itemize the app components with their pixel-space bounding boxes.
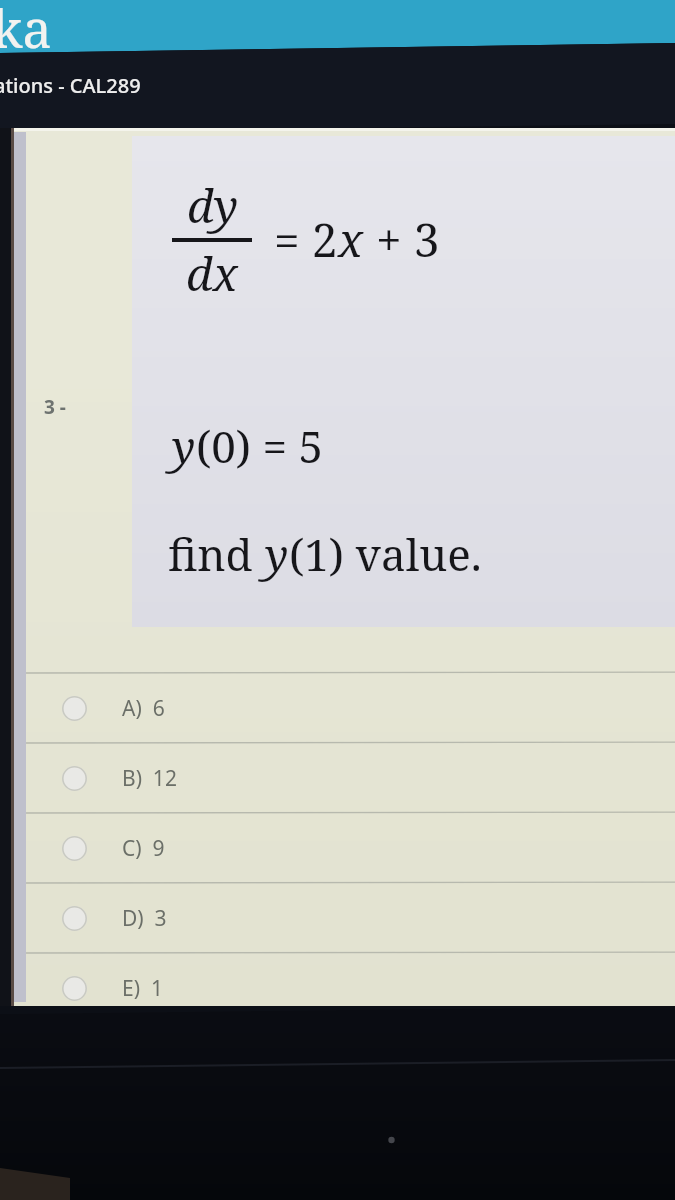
staticText: dy <box>187 174 238 237</box>
staticText: = 2 <box>274 208 338 271</box>
button[interactable]: B) 12 <box>26 744 675 812</box>
button[interactable]: A) 6 <box>26 674 675 742</box>
staticText: x <box>338 208 364 271</box>
button[interactable]: D) 3 <box>26 884 675 952</box>
staticText: A) 6 <box>122 694 165 723</box>
staticText: D) 3 <box>122 904 167 933</box>
staticText: C) 9 <box>122 834 165 863</box>
staticText: ka <box>0 0 52 63</box>
staticText: 3 - <box>44 394 66 420</box>
staticText: y <box>265 524 289 584</box>
staticText: B) 12 <box>122 764 177 793</box>
staticText: dx <box>186 242 238 305</box>
staticText: (0) = 5 <box>196 416 324 476</box>
staticText: (1) value. <box>289 524 482 584</box>
staticText: E) 1 <box>122 974 163 1003</box>
staticText: find <box>168 524 265 584</box>
staticText: + 3 <box>364 208 440 271</box>
staticText: ations - CAL289 <box>0 72 141 99</box>
staticText: y <box>172 416 196 476</box>
button[interactable]: E) 1 <box>26 954 675 1022</box>
button[interactable]: C) 9 <box>26 814 675 882</box>
